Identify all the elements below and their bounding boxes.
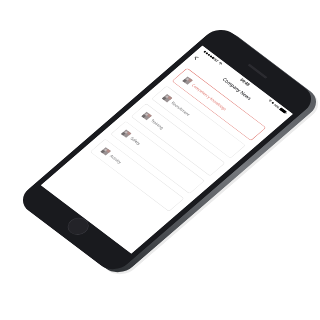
staticText: 98% <box>273 103 281 109</box>
staticText: Safety <box>129 136 142 146</box>
staticText: Training <box>150 118 165 130</box>
staticText: Activity <box>109 154 123 165</box>
button[interactable]: Safety <box>110 121 205 194</box>
button[interactable]: Recruitment <box>151 85 246 159</box>
button[interactable]: Activity <box>90 138 184 212</box>
staticText: Company News <box>221 76 253 101</box>
staticText: Recruitment <box>170 101 191 117</box>
staticText: 09:48 <box>239 77 251 87</box>
button[interactable]: Training <box>131 103 225 176</box>
staticText: Competency knowledge <box>191 83 228 112</box>
button[interactable]: Back <box>190 53 202 62</box>
button[interactable]: Competency knowledge <box>172 68 266 141</box>
staticText: AT&T <box>210 55 220 63</box>
